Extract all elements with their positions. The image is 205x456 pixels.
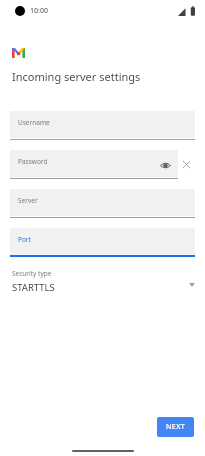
button[interactable]: Username — [10, 111, 195, 140]
button[interactable]: Clear password — [181, 159, 192, 170]
staticText: 10:00 — [30, 6, 48, 16]
button[interactable]: Port — [10, 228, 195, 257]
button[interactable]: Password — [10, 150, 178, 179]
button[interactable]: Security type — [0, 269, 205, 303]
staticText: NEXT — [166, 422, 186, 432]
button[interactable]: Server — [10, 189, 195, 218]
staticText: Server — [18, 196, 38, 205]
staticText: Port — [18, 235, 31, 244]
button[interactable]: Show password — [160, 160, 171, 171]
button[interactable]: NEXT — [157, 417, 194, 437]
staticText: Security type — [12, 269, 52, 278]
staticText: Password — [18, 157, 48, 166]
staticText: STARTTLS — [12, 281, 55, 294]
staticText: Incoming server settings — [12, 69, 141, 84]
staticText: Username — [18, 118, 50, 127]
